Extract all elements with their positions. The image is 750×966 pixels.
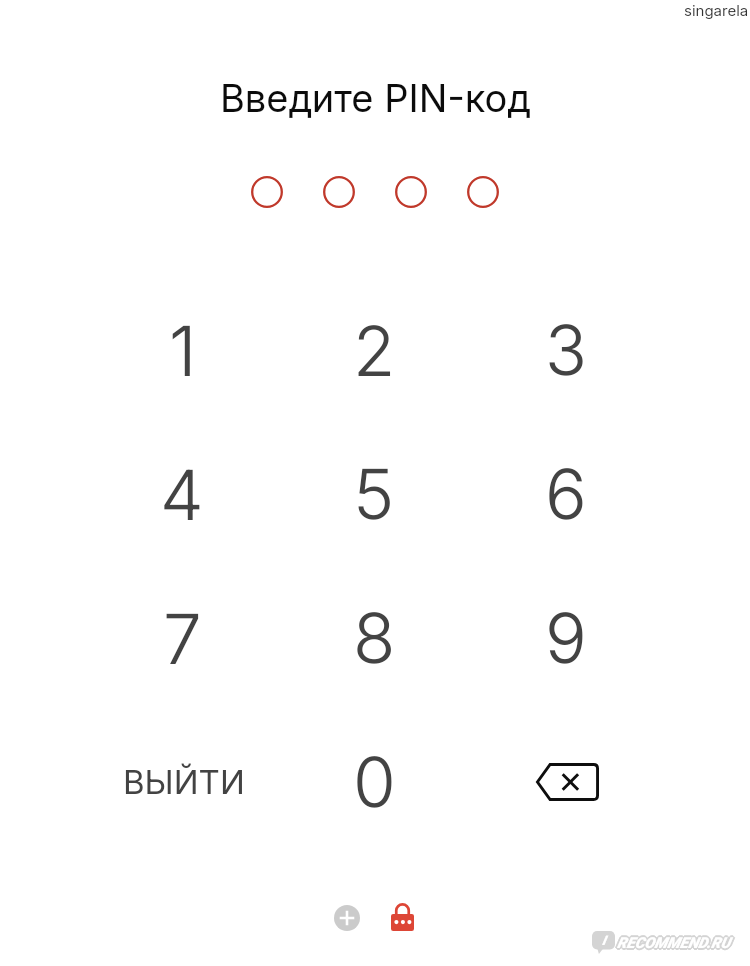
button[interactable] bbox=[491, 284, 641, 416]
button[interactable] bbox=[299, 572, 449, 704]
staticText: ВЫЙТИ bbox=[123, 762, 245, 802]
staticText: RECOMMEND.RU bbox=[618, 935, 732, 953]
button[interactable]: Backspace bbox=[497, 726, 637, 838]
button[interactable]: Lock screen bbox=[391, 903, 414, 931]
button[interactable] bbox=[107, 428, 257, 560]
staticText: RECOMMEND.RU bbox=[615, 934, 729, 952]
staticText: singarela bbox=[684, 1, 749, 19]
staticText: RECOMMEND.RU bbox=[616, 934, 730, 952]
staticText: RECOMMEND.RU bbox=[616, 935, 730, 953]
button[interactable] bbox=[299, 428, 449, 560]
staticText: RECOMMEND.RU bbox=[617, 932, 731, 950]
staticText: RECOMMEND.RU bbox=[618, 934, 732, 952]
staticText: Введите PIN-код bbox=[220, 75, 531, 121]
button[interactable] bbox=[299, 716, 449, 848]
button[interactable] bbox=[491, 572, 641, 704]
staticText: I bbox=[602, 933, 606, 948]
staticText: RECOMMEND.RU bbox=[618, 933, 732, 951]
staticText: RECOMMEND.RU bbox=[619, 934, 733, 952]
button[interactable] bbox=[107, 572, 257, 704]
staticText: RECOMMEND.RU bbox=[617, 935, 731, 953]
staticText: RECOMMEND.RU bbox=[617, 936, 731, 954]
button[interactable] bbox=[491, 428, 641, 560]
button[interactable] bbox=[299, 284, 449, 416]
staticText: RECOMMEND.RU bbox=[617, 933, 731, 951]
staticText: RECOMMEND.RU bbox=[617, 934, 731, 952]
staticText: RECOMMEND.RU bbox=[616, 933, 730, 951]
button[interactable]: Add bbox=[334, 905, 360, 931]
button[interactable]: ВЫЙТИ bbox=[89, 726, 279, 838]
button[interactable] bbox=[107, 284, 257, 416]
